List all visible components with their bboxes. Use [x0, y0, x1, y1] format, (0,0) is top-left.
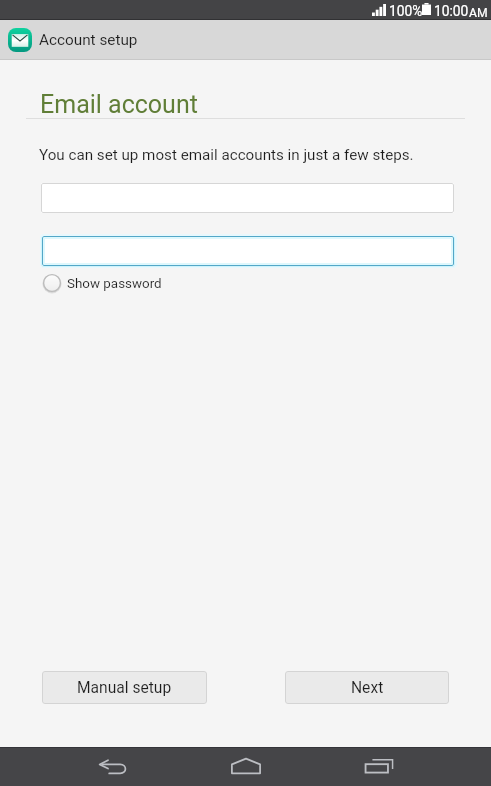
staticText: Account setup — [39, 31, 138, 49]
button[interactable]: Account setup — [8, 28, 138, 52]
button[interactable]: Manual setup — [42, 671, 207, 704]
staticText: Manual setup — [77, 679, 172, 697]
button[interactable] — [41, 183, 454, 213]
button[interactable]: Show password — [42, 272, 162, 293]
button[interactable] — [42, 236, 454, 266]
staticText: Show password — [67, 276, 162, 292]
staticText: Next — [351, 679, 384, 697]
staticText: You can set up most email accounts in ju… — [39, 146, 414, 164]
button[interactable]: Back — [73, 747, 152, 786]
staticText: AM — [469, 6, 488, 20]
button[interactable]: Home — [206, 747, 285, 786]
staticText: 100% — [389, 3, 423, 19]
button[interactable]: Next — [285, 671, 449, 704]
staticText: 10:00 — [434, 3, 469, 19]
button[interactable]: Recent apps — [339, 747, 418, 786]
staticText: Email account — [40, 90, 198, 119]
